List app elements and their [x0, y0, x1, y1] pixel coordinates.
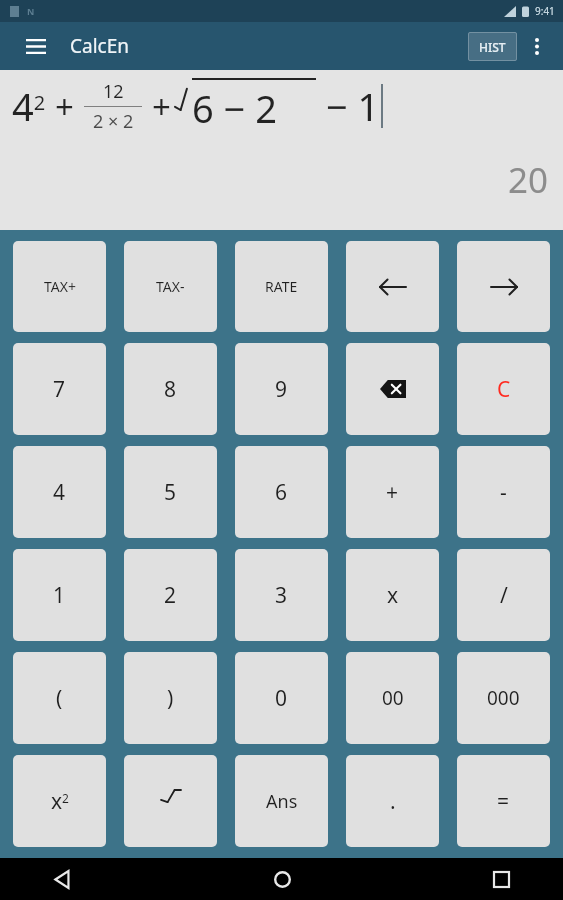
- staticText: 42: [12, 80, 46, 132]
- staticText: 7: [53, 375, 66, 404]
- staticText: +: [55, 84, 74, 129]
- staticText: 2: [164, 581, 177, 610]
- staticText: +: [386, 478, 399, 507]
- button[interactable]: Home: [260, 858, 304, 900]
- button[interactable]: 000: [457, 652, 550, 744]
- staticText: 5: [164, 478, 177, 507]
- button[interactable]: +: [346, 446, 439, 538]
- button[interactable]: 4: [13, 446, 106, 538]
- staticText: TAX+: [44, 277, 76, 296]
- button[interactable]: Recent apps: [479, 858, 523, 900]
- staticText: TAX-: [156, 277, 185, 296]
- staticText: 1: [53, 581, 66, 610]
- staticText: 20: [508, 156, 549, 204]
- staticText: 000: [487, 685, 520, 711]
- button[interactable]: HIST: [468, 32, 517, 61]
- button[interactable]: 0: [235, 652, 328, 744]
- staticText: 0: [275, 684, 288, 713]
- button[interactable]: Move cursor right: [457, 241, 550, 332]
- staticText: − 1: [326, 80, 380, 132]
- staticText: ): [167, 684, 174, 713]
- button[interactable]: Ans: [235, 755, 328, 847]
- button[interactable]: More options: [517, 26, 557, 66]
- staticText: Ans: [266, 789, 298, 814]
- staticText: /: [500, 581, 508, 610]
- staticText: 9: [275, 375, 288, 404]
- staticText: -: [500, 478, 507, 507]
- staticText: 12: [103, 79, 124, 104]
- button[interactable]: Open navigation drawer: [16, 26, 56, 66]
- button[interactable]: Back: [40, 858, 84, 900]
- button[interactable]: 2: [124, 549, 217, 641]
- staticText: C: [497, 375, 511, 404]
- staticText: +: [152, 84, 171, 129]
- button[interactable]: 8: [124, 343, 217, 435]
- button[interactable]: Move cursor left: [346, 241, 439, 332]
- button[interactable]: (: [13, 652, 106, 744]
- button[interactable]: TAX-: [124, 241, 217, 332]
- staticText: N: [27, 5, 35, 17]
- staticText: 9:41: [535, 4, 555, 18]
- staticText: 3: [275, 581, 288, 610]
- staticText: 8: [164, 375, 177, 404]
- button[interactable]: 3: [235, 549, 328, 641]
- button[interactable]: 7: [13, 343, 106, 435]
- button[interactable]: /: [457, 549, 550, 641]
- staticText: RATE: [265, 277, 298, 296]
- button[interactable]: C: [457, 343, 550, 435]
- button[interactable]: x: [346, 549, 439, 641]
- button[interactable]: Backspace: [346, 343, 439, 435]
- button[interactable]: TAX+: [13, 241, 106, 332]
- staticText: 4: [53, 478, 66, 507]
- staticText: =: [497, 787, 510, 816]
- staticText: x2: [51, 787, 69, 816]
- button[interactable]: x2: [13, 755, 106, 847]
- staticText: 00: [382, 685, 404, 711]
- button[interactable]: RATE: [235, 241, 328, 332]
- staticText: x: [387, 581, 399, 610]
- staticText: (: [56, 684, 63, 713]
- button[interactable]: -: [457, 446, 550, 538]
- button[interactable]: [124, 755, 217, 847]
- button[interactable]: .: [346, 755, 439, 847]
- button[interactable]: 6: [235, 446, 328, 538]
- staticText: HIST: [479, 39, 506, 55]
- button[interactable]: 9: [235, 343, 328, 435]
- staticText: .: [390, 787, 396, 816]
- staticText: 6 − 2: [192, 82, 277, 134]
- button[interactable]: ): [124, 652, 217, 744]
- button[interactable]: 5: [124, 446, 217, 538]
- staticText: 6: [275, 478, 288, 507]
- button[interactable]: =: [457, 755, 550, 847]
- staticText: CalcEn: [70, 33, 129, 59]
- button[interactable]: 00: [346, 652, 439, 744]
- button[interactable]: 1: [13, 549, 106, 641]
- staticText: 2 × 2: [93, 109, 134, 134]
